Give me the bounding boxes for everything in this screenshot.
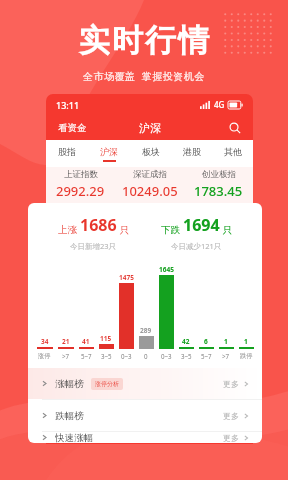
staticText: >7 bbox=[222, 352, 230, 360]
staticText: 深证成指 bbox=[133, 169, 167, 180]
staticText: 4G bbox=[214, 99, 225, 110]
staticText: 创业板指 bbox=[202, 169, 236, 180]
button[interactable]: 看资金 bbox=[56, 120, 89, 136]
staticText: 115 bbox=[100, 334, 112, 343]
staticText: 今日减少121只 bbox=[171, 241, 222, 251]
staticText: >7 bbox=[62, 352, 70, 360]
staticText: 289 bbox=[140, 326, 152, 335]
staticText: 沪深 bbox=[100, 146, 118, 157]
button[interactable]: 跌幅榜 bbox=[28, 400, 262, 431]
staticText: 5~7 bbox=[81, 352, 92, 360]
staticText: 看资金 bbox=[58, 122, 87, 134]
staticText: 上涨 bbox=[58, 223, 80, 236]
staticText: 1686 bbox=[80, 214, 117, 236]
staticText: 只 bbox=[220, 223, 232, 236]
staticText: 港股 bbox=[183, 146, 201, 157]
button[interactable]: 沪深 bbox=[88, 140, 130, 167]
staticText: +19.47 +0.19% bbox=[127, 201, 173, 210]
staticText: 跌幅榜 bbox=[55, 410, 84, 422]
button[interactable]: 快速涨幅 bbox=[28, 432, 262, 443]
staticText: 6 bbox=[204, 337, 208, 346]
staticText: 涨幅榜 bbox=[55, 378, 84, 390]
button[interactable]: 板块 bbox=[130, 140, 171, 167]
staticText: 全市场覆盖 掌握投资机会 bbox=[83, 69, 205, 83]
staticText: 0 bbox=[144, 352, 148, 360]
staticText: 更多 bbox=[223, 411, 239, 421]
staticText: -0.94 -0.05% bbox=[199, 201, 238, 210]
button[interactable]: 上证指数 bbox=[46, 169, 115, 210]
staticText: 今日新增23只 bbox=[70, 241, 117, 251]
staticText: 3~5 bbox=[101, 352, 112, 360]
button[interactable]: 深证成指 bbox=[115, 169, 184, 210]
button[interactable]: 股指 bbox=[46, 140, 88, 167]
staticText: 5~7 bbox=[201, 352, 212, 360]
staticText: 34 bbox=[41, 337, 49, 346]
button[interactable]: 涨幅榜 bbox=[28, 368, 262, 399]
staticText: 上证指数 bbox=[64, 169, 98, 180]
staticText: 42 bbox=[182, 337, 190, 346]
staticText: 只 bbox=[117, 223, 129, 236]
staticText: 1 bbox=[244, 337, 248, 346]
staticText: 涨停 bbox=[38, 352, 51, 360]
button[interactable]: 其他 bbox=[212, 140, 253, 167]
staticText: 21 bbox=[62, 337, 70, 346]
staticText: 2992.29 bbox=[56, 182, 105, 200]
staticText: 1694 bbox=[183, 214, 220, 236]
staticText: +10.41 +0.35% bbox=[58, 201, 104, 210]
staticText: 跌停 bbox=[240, 352, 253, 360]
staticText: 涨停分析 bbox=[95, 380, 119, 388]
button[interactable]: 港股 bbox=[171, 140, 212, 167]
staticText: 13:11 bbox=[56, 99, 80, 111]
staticText: 实时行情 bbox=[78, 21, 210, 60]
staticText: 1645 bbox=[159, 265, 174, 274]
button[interactable]: 创业板指 bbox=[184, 169, 253, 210]
staticText: 更多 bbox=[223, 379, 239, 389]
staticText: 快速涨幅 bbox=[55, 432, 93, 443]
staticText: 1475 bbox=[119, 273, 134, 282]
staticText: 其他 bbox=[224, 146, 242, 157]
staticText: 3~5 bbox=[181, 352, 192, 360]
staticText: 10249.05 bbox=[122, 182, 178, 200]
staticText: 1783.45 bbox=[194, 182, 243, 200]
staticText: 0~3 bbox=[121, 352, 132, 360]
staticText: 股指 bbox=[58, 146, 76, 157]
staticText: 下跌 bbox=[161, 223, 183, 236]
staticText: 沪深 bbox=[139, 121, 161, 135]
staticText: 1 bbox=[224, 337, 228, 346]
button[interactable]: Search bbox=[226, 119, 243, 136]
staticText: 41 bbox=[82, 337, 90, 346]
staticText: 更多 bbox=[223, 433, 239, 443]
staticText: 板块 bbox=[142, 146, 160, 157]
staticText: 0~3 bbox=[161, 352, 172, 360]
